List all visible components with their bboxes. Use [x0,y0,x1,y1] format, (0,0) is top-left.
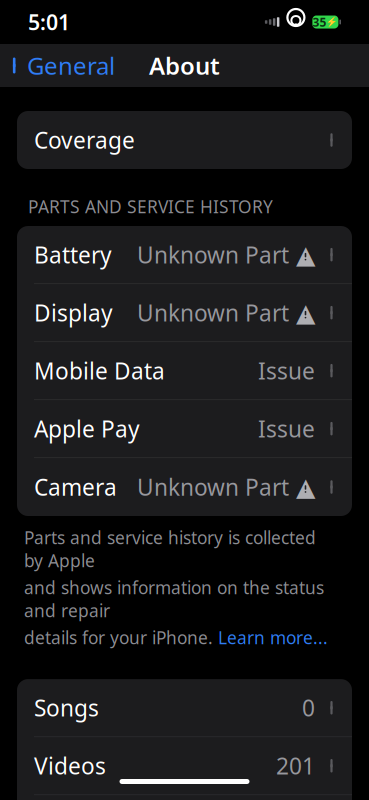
staticText: 35 [312,14,326,30]
button[interactable]: Coverage [17,111,352,169]
staticText: Display [34,298,113,328]
staticText: Parts and service history is collected b… [24,526,316,572]
staticText: Videos [34,751,106,781]
button[interactable]: General [0,42,115,89]
button[interactable]: Mobile Data [17,342,352,400]
button[interactable]: Apple Pay [17,400,352,458]
staticText: Songs [34,693,99,723]
staticText: ▲ [296,473,315,501]
staticText: and shows information on the status and … [24,576,324,622]
staticText: ⚡ [326,17,338,27]
button[interactable]: Camera [17,458,352,516]
staticText: 5:01 [28,8,70,36]
staticText: Unknown Part [137,298,289,328]
button[interactable]: Display [17,284,352,342]
button[interactable]: Learn more... [218,626,328,649]
staticText: 201 [276,751,315,781]
staticText: Learn more... [218,626,328,649]
staticText: Issue [258,414,315,444]
staticText: Unknown Part [137,240,289,270]
button[interactable]: Songs [17,679,352,737]
staticText: Coverage [34,125,135,155]
staticText: 0 [302,693,315,723]
staticText: Unknown Part [137,472,289,502]
staticText: ▲ [296,240,315,269]
staticText: About [149,50,220,81]
button[interactable]: Battery [17,226,352,284]
staticText: Mobile Data [34,356,165,386]
staticText: Issue [258,356,315,386]
button[interactable]: Videos [17,737,352,795]
staticText: Apple Pay [34,414,140,444]
staticText: details for your iPhone. [24,626,218,649]
staticText: Camera [34,472,117,502]
staticText: PARTS AND SERVICE HISTORY [28,195,273,218]
staticText: General [27,50,115,81]
staticText: ▲ [296,298,315,327]
staticText: Battery [34,240,112,270]
